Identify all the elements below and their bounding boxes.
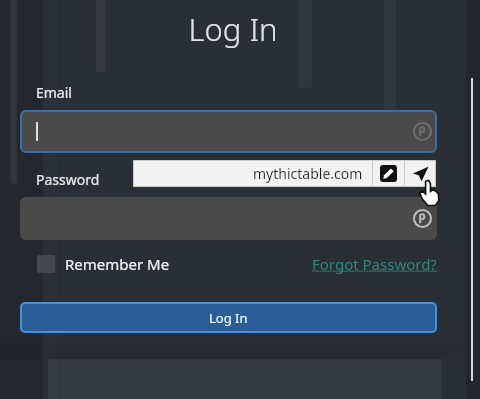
button[interactable] — [20, 197, 437, 240]
button[interactable]: Log In — [20, 302, 437, 333]
staticText: Forgot Password? — [312, 254, 437, 274]
staticText: Password — [36, 170, 100, 189]
staticText: mythictable.com — [253, 164, 363, 183]
staticText: Log In — [0, 8, 466, 50]
button[interactable]: Forgot Password? — [312, 254, 437, 274]
button[interactable]: Edit — [373, 160, 404, 187]
button[interactable]: Send — [405, 160, 436, 187]
button[interactable] — [20, 110, 437, 153]
button[interactable]: Remember Me — [20, 254, 170, 274]
staticText: Email — [36, 83, 72, 102]
staticText: Remember Me — [65, 254, 170, 274]
staticText: Log In — [209, 309, 248, 327]
